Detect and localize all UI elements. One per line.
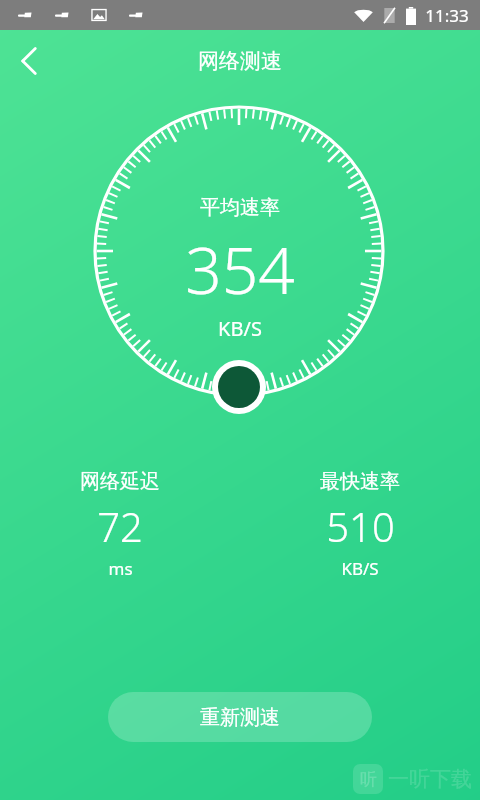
button[interactable]: 网络延迟: [0, 467, 240, 582]
button[interactable]: 最快速率: [240, 467, 480, 582]
staticText: 72: [97, 499, 143, 553]
staticText: 510: [326, 499, 395, 553]
staticText: 网络延迟: [80, 469, 160, 494]
staticText: 重新测速: [200, 705, 280, 730]
button[interactable]: 重新测速: [108, 692, 372, 742]
staticText: 最快速率: [320, 469, 400, 494]
staticText: KB/S: [341, 557, 379, 580]
staticText: ms: [108, 557, 133, 580]
staticText: 网络测速: [198, 48, 282, 74]
staticText: 11:33: [425, 4, 469, 27]
button[interactable]: Back: [0, 32, 58, 90]
staticText: 平均速率: [200, 195, 280, 220]
staticText: 354: [185, 226, 295, 313]
staticText: KB/S: [218, 315, 262, 342]
staticText: 听: [360, 769, 377, 790]
staticText: 一听下载: [388, 766, 472, 792]
